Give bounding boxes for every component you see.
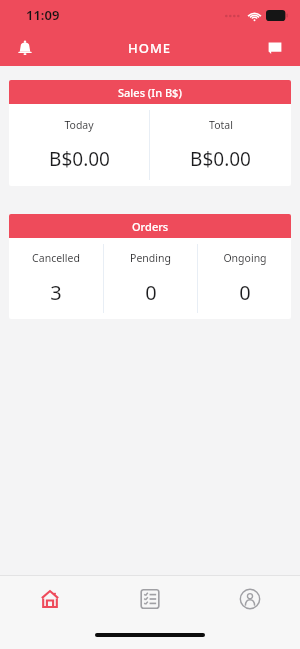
staticText: Today: [64, 118, 94, 132]
button[interactable]: Sales (In B$): [9, 80, 291, 186]
button[interactable]: Notifications: [8, 31, 42, 65]
staticText: B$0.00: [49, 146, 110, 172]
button[interactable]: Orders: [100, 576, 200, 621]
staticText: Ongoing: [223, 251, 267, 265]
button[interactable]: Home: [0, 576, 100, 621]
staticText: Orders: [132, 219, 169, 234]
staticText: Total: [209, 118, 233, 132]
staticText: B$0.00: [190, 146, 251, 172]
staticText: 0: [239, 279, 251, 306]
staticText: 0: [145, 279, 157, 306]
button[interactable]: Orders: [9, 214, 291, 319]
staticText: Cancelled: [32, 251, 80, 265]
button[interactable]: Messages: [258, 31, 292, 65]
staticText: Pending: [130, 251, 171, 265]
staticText: Sales (In B$): [118, 85, 182, 100]
button[interactable]: Profile: [200, 576, 300, 621]
staticText: 11:09: [26, 6, 60, 24]
staticText: 3: [50, 279, 62, 306]
staticText: HOME: [128, 39, 172, 57]
